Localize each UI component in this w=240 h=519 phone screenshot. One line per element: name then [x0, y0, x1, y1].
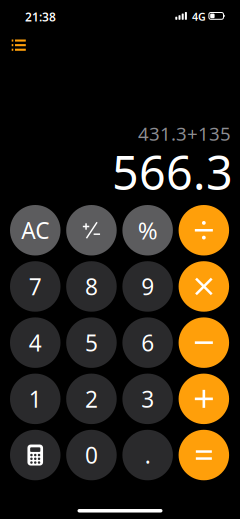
button[interactable]: %	[122, 205, 173, 255]
button[interactable]: Plus minus	[66, 205, 117, 255]
button[interactable]: Minus	[179, 317, 229, 368]
button[interactable]: 9	[122, 261, 173, 312]
button[interactable]: Multiply	[179, 261, 229, 312]
staticText: %	[138, 214, 158, 246]
button[interactable]: Calculator	[10, 430, 60, 480]
button[interactable]: 0	[66, 430, 117, 480]
staticText: 1	[29, 384, 42, 414]
button[interactable]: 8	[66, 261, 117, 312]
staticText: 3	[141, 384, 154, 414]
button[interactable]: 1	[10, 374, 60, 424]
button[interactable]: Equals	[179, 430, 229, 480]
button[interactable]: Plus	[179, 374, 229, 424]
button[interactable]: History	[1, 30, 37, 60]
staticText: 9	[141, 271, 154, 301]
button[interactable]: 2	[66, 374, 117, 424]
staticText: 8	[85, 271, 98, 301]
button[interactable]: 4	[10, 317, 60, 368]
button[interactable]: 5	[66, 317, 117, 368]
staticText: 566.3	[112, 141, 233, 203]
staticText: .	[145, 440, 151, 470]
staticText: 6	[141, 328, 154, 358]
staticText: 4	[29, 328, 42, 358]
staticText: 0	[85, 440, 98, 470]
staticText: 7	[29, 271, 42, 301]
staticText: 4G	[192, 9, 206, 24]
button[interactable]: .	[122, 430, 173, 480]
button[interactable]: Divide	[179, 205, 229, 255]
button[interactable]: AC	[10, 205, 60, 255]
button[interactable]: 3	[122, 374, 173, 424]
staticText: 21:38	[25, 9, 56, 25]
staticText: AC	[21, 215, 49, 245]
button[interactable]: 6	[122, 317, 173, 368]
staticText: 5	[85, 328, 98, 358]
staticText: 2	[85, 384, 98, 414]
button[interactable]: 7	[10, 261, 60, 312]
staticText: 431.3+135	[138, 121, 231, 146]
